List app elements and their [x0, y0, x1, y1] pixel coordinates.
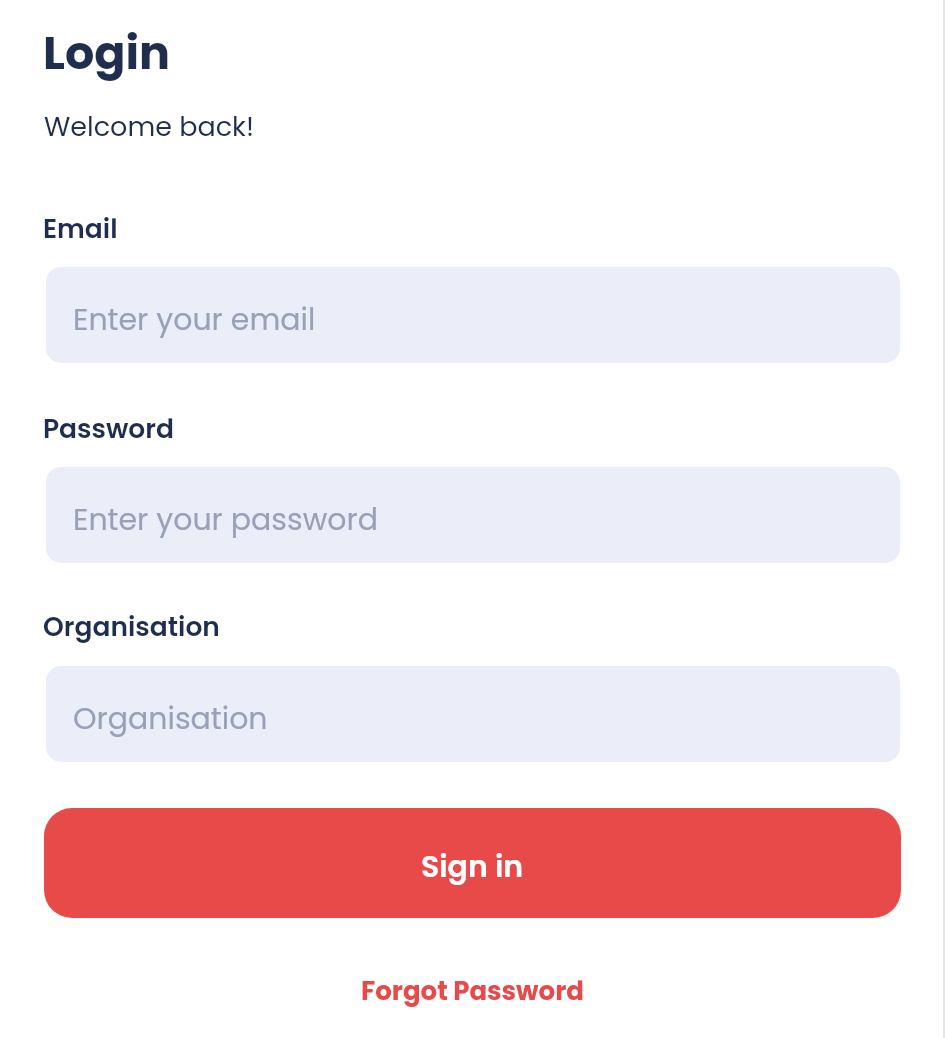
button[interactable]: Sign in	[44, 808, 901, 918]
button[interactable]: Enter your email	[46, 267, 900, 363]
staticText: Forgot Password	[361, 973, 584, 1009]
button[interactable]: Enter your password	[46, 467, 900, 563]
button[interactable]: Organisation	[46, 666, 900, 762]
staticText: Login	[43, 21, 171, 85]
staticText: Sign in	[421, 846, 524, 888]
button[interactable]: Forgot Password	[361, 973, 584, 1009]
staticText: Enter your password	[73, 499, 378, 541]
staticText: Email	[43, 210, 118, 247]
staticText: Password	[43, 410, 174, 447]
staticText: Organisation	[73, 698, 268, 740]
staticText: Organisation	[43, 608, 220, 645]
staticText: Enter your email	[73, 299, 316, 341]
staticText: Welcome back!	[44, 108, 255, 146]
